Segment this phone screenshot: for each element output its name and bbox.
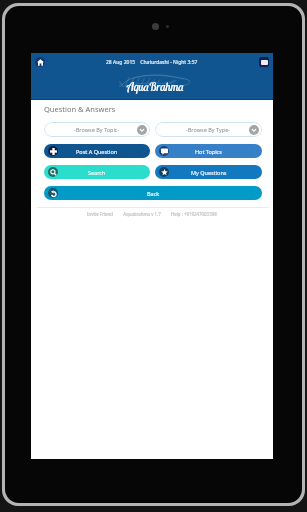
button[interactable]: Post A Question [44, 144, 150, 158]
button[interactable]: My Questions [155, 165, 262, 179]
staticText: AquaBrahma [127, 80, 184, 94]
button[interactable]: -Browse By Topic- [44, 122, 150, 137]
staticText: 28 Aug 2015 Chaturdashi - Night 3:57 [106, 59, 198, 66]
staticText: Invite Friend Aquabrahma v 1.7 Help : +9… [87, 211, 217, 217]
button[interactable]: Search [44, 165, 150, 179]
button[interactable]: Home [35, 57, 45, 67]
staticText: My Questions [191, 169, 227, 176]
staticText: -Browse By Topic- [74, 126, 120, 133]
staticText: -Browse By Type- [186, 126, 231, 133]
button[interactable]: Menu [259, 57, 269, 67]
button[interactable]: -Browse By Type- [155, 122, 262, 137]
button[interactable]: Back [44, 186, 262, 200]
staticText: Hot Topics [195, 148, 222, 155]
staticText: Question & Answers [44, 104, 116, 114]
staticText: Back [147, 190, 160, 197]
staticText: Search [88, 169, 106, 176]
staticText: Post A Question [76, 148, 118, 155]
button[interactable]: Hot Topics [155, 144, 262, 158]
